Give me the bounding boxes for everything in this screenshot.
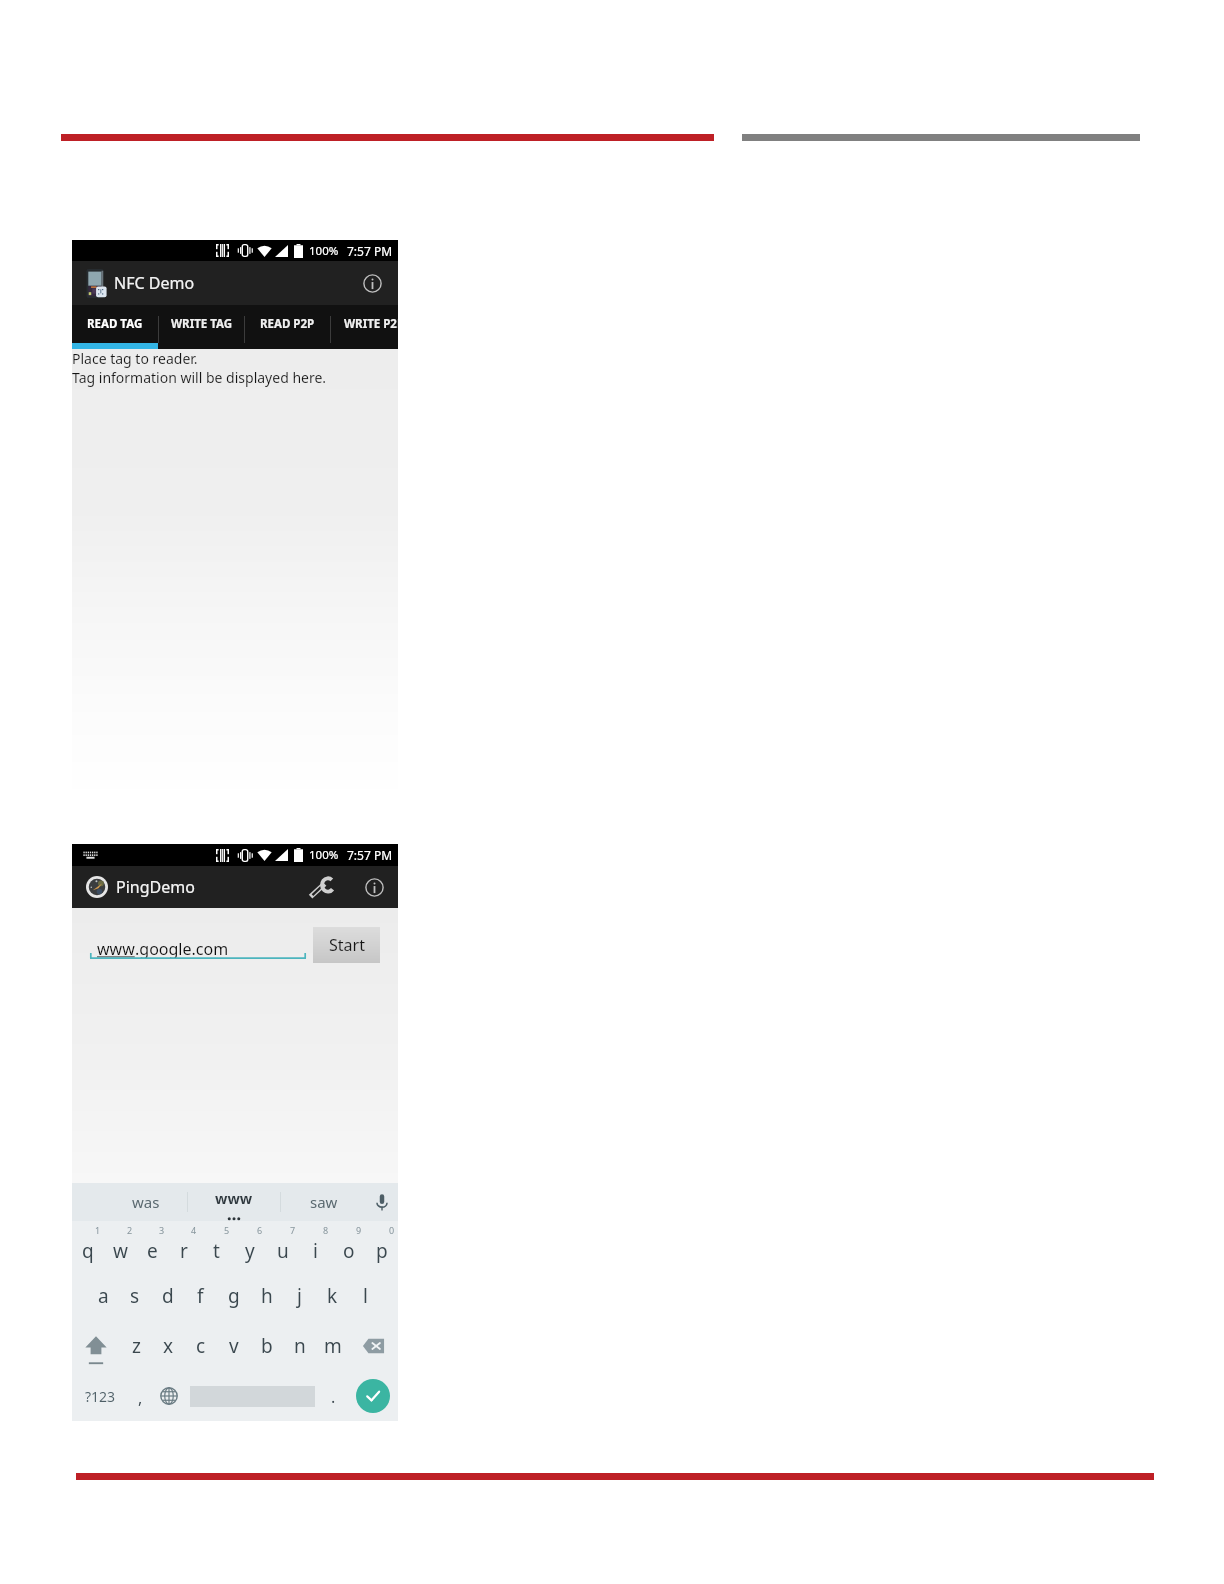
staticText: . bbox=[331, 1386, 336, 1408]
staticText: x bbox=[163, 1333, 174, 1359]
button[interactable]: 8 bbox=[299, 1221, 332, 1271]
staticText: 8 bbox=[323, 1224, 329, 1236]
staticText: k bbox=[327, 1283, 338, 1309]
staticText: w bbox=[113, 1238, 128, 1264]
staticText: 3 bbox=[159, 1224, 165, 1236]
button[interactable]: z bbox=[120, 1321, 152, 1371]
button[interactable]: 9 bbox=[332, 1221, 365, 1271]
staticText: d bbox=[162, 1283, 174, 1309]
staticText: a bbox=[98, 1283, 109, 1309]
staticText: WRITE P2P bbox=[344, 316, 398, 332]
button[interactable]: was bbox=[72, 1183, 187, 1221]
staticText: e bbox=[147, 1238, 158, 1264]
button[interactable]: 1 bbox=[72, 1221, 104, 1271]
button[interactable]: a bbox=[87, 1271, 119, 1321]
button[interactable] bbox=[186, 1371, 318, 1421]
staticText: l bbox=[363, 1283, 368, 1309]
staticText: 100% bbox=[309, 243, 339, 259]
staticText: NFC Demo bbox=[114, 272, 195, 294]
staticText: i bbox=[313, 1238, 318, 1264]
button[interactable]: l bbox=[349, 1271, 382, 1321]
button[interactable]: saw bbox=[281, 1183, 366, 1221]
staticText: 100% bbox=[309, 847, 339, 863]
button[interactable]: 3 bbox=[136, 1221, 168, 1271]
button[interactable]: WRITE P2P bbox=[331, 305, 398, 343]
button[interactable]: . bbox=[318, 1371, 348, 1421]
staticText: 2 bbox=[127, 1224, 133, 1236]
staticText: p bbox=[376, 1238, 388, 1264]
button[interactable]: READ P2P bbox=[245, 305, 330, 343]
button[interactable]: f bbox=[184, 1271, 217, 1321]
staticText: 4 bbox=[191, 1224, 197, 1236]
staticText: s bbox=[130, 1283, 140, 1309]
staticText: www bbox=[215, 1188, 253, 1208]
staticText: WRITE TAG bbox=[171, 316, 233, 332]
staticText: 5 bbox=[224, 1224, 230, 1236]
staticText: www bbox=[97, 938, 135, 960]
button[interactable]: Settings bbox=[308, 873, 336, 901]
button[interactable]: j bbox=[283, 1271, 316, 1321]
staticText: u bbox=[277, 1238, 289, 1264]
staticText: 7:57 PM bbox=[347, 847, 393, 863]
button[interactable]: Change language bbox=[152, 1371, 186, 1421]
staticText: v bbox=[229, 1333, 239, 1359]
staticText: 6 bbox=[257, 1224, 263, 1236]
button[interactable]: h bbox=[250, 1271, 283, 1321]
button[interactable]: m bbox=[316, 1321, 349, 1371]
staticText: n bbox=[294, 1333, 306, 1359]
button[interactable]: www bbox=[188, 1183, 280, 1221]
staticText: h bbox=[261, 1283, 273, 1309]
button[interactable]: n bbox=[283, 1321, 316, 1371]
staticText: was bbox=[132, 1192, 160, 1212]
staticText: 9 bbox=[356, 1224, 362, 1236]
button[interactable]: READ TAG bbox=[72, 305, 158, 343]
staticText: m bbox=[324, 1333, 342, 1359]
button[interactable]: About bbox=[358, 269, 386, 297]
staticText: READ P2P bbox=[260, 316, 315, 332]
staticText: f bbox=[197, 1283, 204, 1309]
button[interactable]: v bbox=[217, 1321, 250, 1371]
button[interactable]: b bbox=[250, 1321, 283, 1371]
button[interactable]: 0 bbox=[365, 1221, 398, 1271]
staticText: READ TAG bbox=[87, 316, 143, 332]
staticText: c bbox=[196, 1333, 206, 1359]
button[interactable]: 4 bbox=[168, 1221, 200, 1271]
button[interactable]: ?123 bbox=[72, 1371, 128, 1421]
button[interactable]: x bbox=[152, 1321, 184, 1371]
staticText: 0 bbox=[389, 1224, 395, 1236]
button[interactable]: WRITE TAG bbox=[159, 305, 244, 343]
staticText: , bbox=[138, 1387, 143, 1409]
button[interactable]: About bbox=[360, 873, 388, 901]
staticText: ?123 bbox=[85, 1387, 116, 1406]
button[interactable]: c bbox=[184, 1321, 217, 1371]
button[interactable]: Start bbox=[313, 927, 380, 963]
button[interactable]: d bbox=[151, 1271, 184, 1321]
button[interactable]: 5 bbox=[200, 1221, 233, 1271]
staticText: 7 bbox=[290, 1224, 296, 1236]
staticText: Place tag to reader. bbox=[72, 349, 198, 368]
staticText: 7:57 PM bbox=[347, 243, 393, 259]
staticText: r bbox=[180, 1238, 188, 1264]
button[interactable]: 7 bbox=[266, 1221, 299, 1271]
staticText: b bbox=[261, 1333, 273, 1359]
staticText: t bbox=[213, 1238, 220, 1264]
staticText: z bbox=[132, 1333, 141, 1359]
staticText: q bbox=[82, 1238, 94, 1264]
button[interactable]: Voice input bbox=[366, 1183, 398, 1221]
staticText: Tag information will be displayed here. bbox=[72, 368, 327, 387]
button[interactable]: 6 bbox=[233, 1221, 266, 1271]
staticText: Start bbox=[329, 934, 365, 956]
button[interactable]: k bbox=[316, 1271, 349, 1321]
staticText: g bbox=[228, 1283, 240, 1309]
staticText: .google.com bbox=[135, 938, 229, 960]
button[interactable]: 2 bbox=[104, 1221, 136, 1271]
button[interactable]: s bbox=[119, 1271, 151, 1321]
button[interactable]: Enter bbox=[348, 1371, 398, 1421]
staticText: o bbox=[343, 1238, 355, 1264]
staticText: y bbox=[245, 1238, 255, 1264]
button[interactable]: Backspace bbox=[349, 1321, 398, 1371]
button[interactable]: , bbox=[128, 1371, 152, 1421]
button[interactable]: Shift bbox=[72, 1321, 120, 1371]
staticText: saw bbox=[310, 1192, 338, 1212]
button[interactable]: g bbox=[217, 1271, 250, 1321]
